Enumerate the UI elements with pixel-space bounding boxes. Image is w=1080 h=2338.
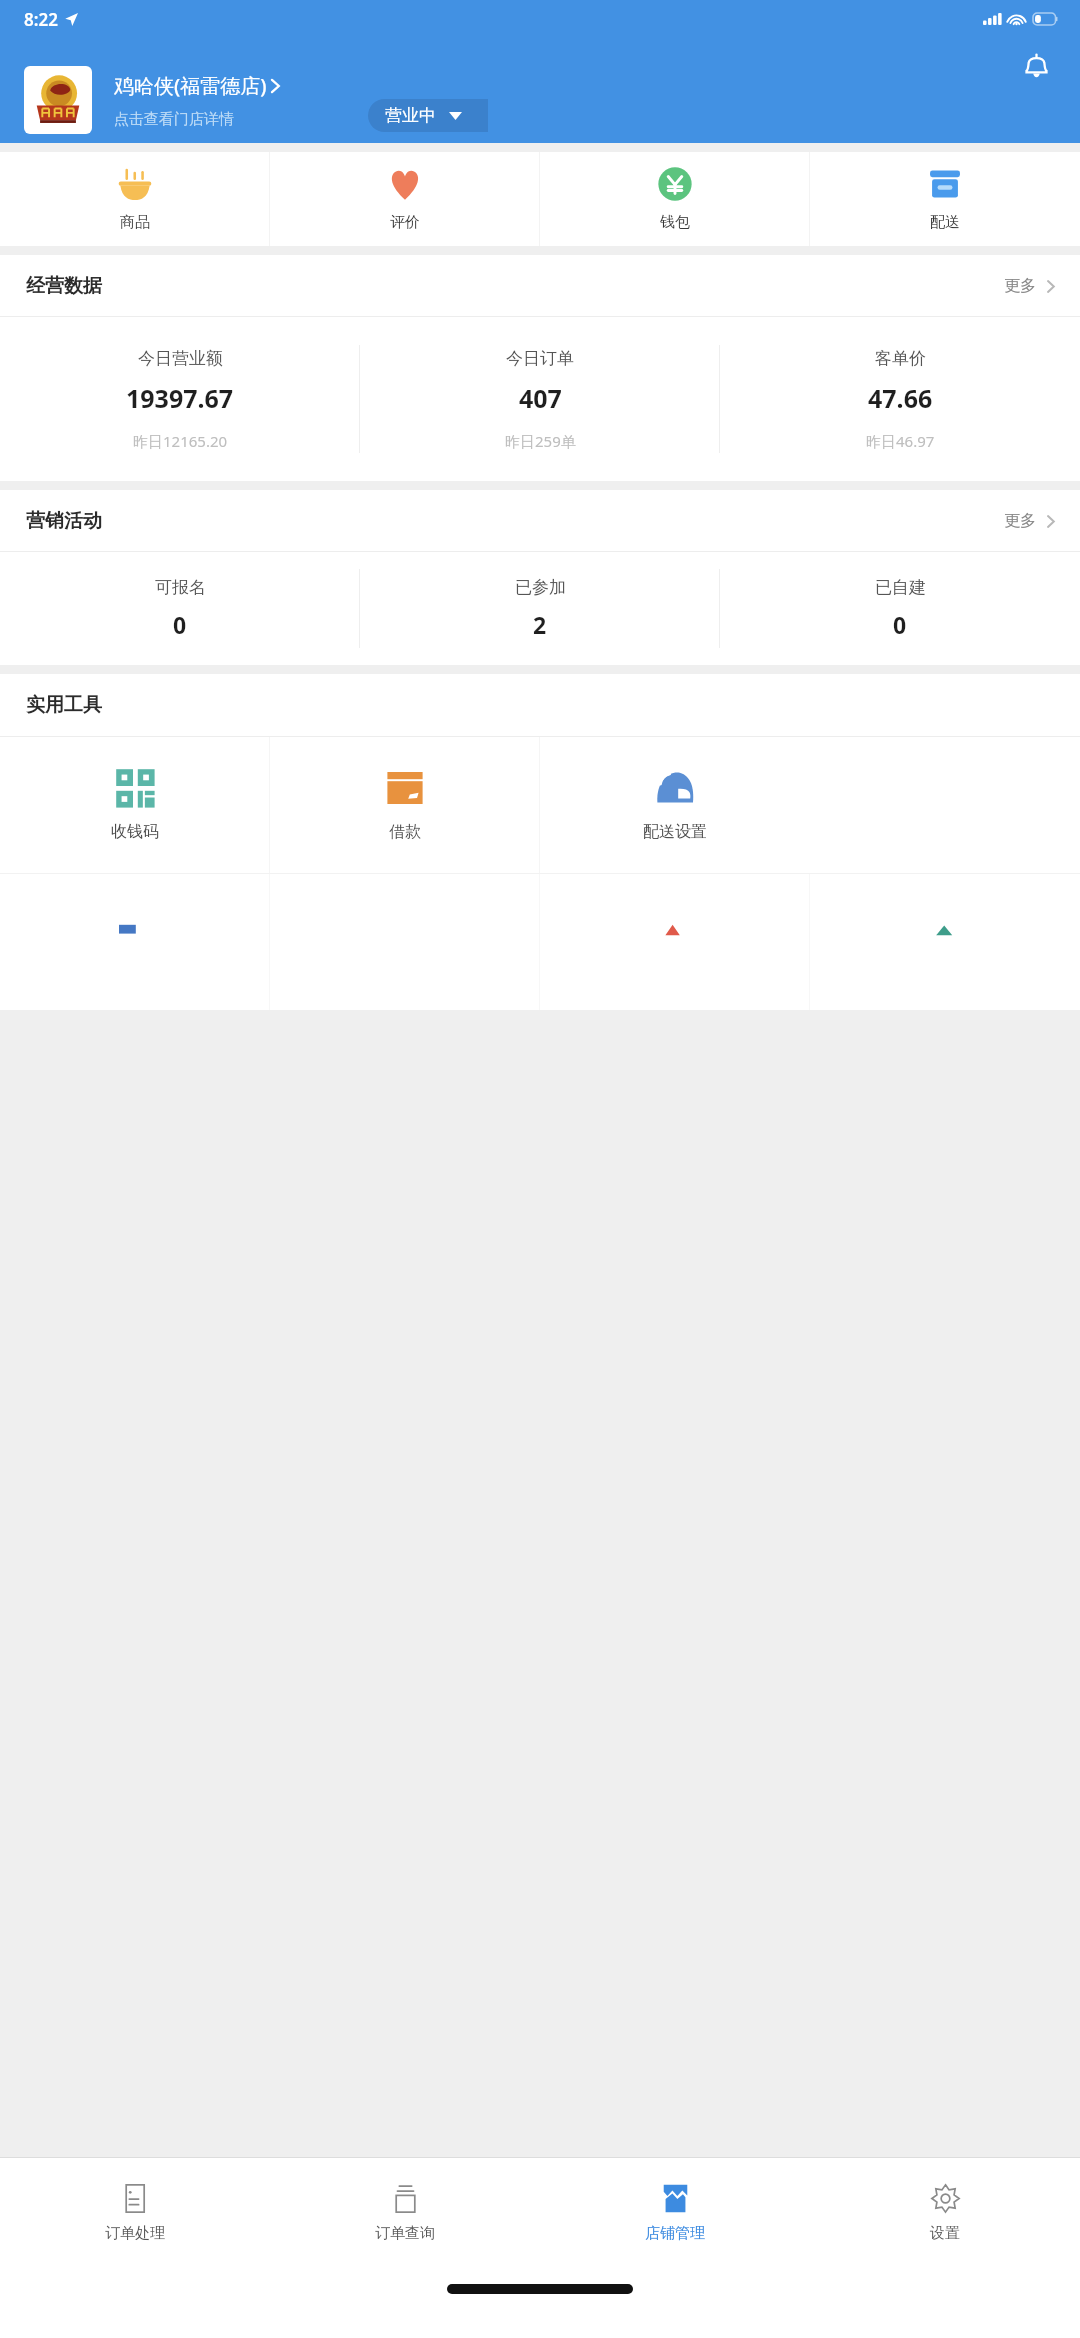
button[interactable]: 鸡哈侠(福雷德店) xyxy=(24,66,281,134)
button[interactable]: 通知 xyxy=(1014,44,1058,88)
staticText: 已参加 xyxy=(515,577,566,598)
button[interactable]: 借款 xyxy=(270,737,540,873)
staticText: 0 xyxy=(893,609,907,640)
button[interactable] xyxy=(810,874,1080,1010)
button[interactable]: 设置 xyxy=(810,2158,1080,2268)
staticText: 实用工具 xyxy=(26,693,102,717)
staticText: 营业中 xyxy=(385,105,436,126)
button[interactable]: 客单价 xyxy=(720,317,1080,481)
staticText: 今日营业额 xyxy=(138,348,223,369)
staticText: 19397.67 xyxy=(126,381,234,415)
staticText: 407 xyxy=(519,381,562,415)
button[interactable]: 钱包 xyxy=(540,152,810,246)
staticText: 今日订单 xyxy=(506,348,574,369)
button[interactable]: 配送设置 xyxy=(540,737,810,873)
staticText: 钱包 xyxy=(660,213,690,232)
staticText: 更多 xyxy=(1004,276,1036,296)
staticText: 营销活动 xyxy=(26,509,102,533)
staticText: 昨日12165.20 xyxy=(133,431,228,451)
staticText: 客单价 xyxy=(875,348,926,369)
button[interactable]: 收钱码 xyxy=(0,737,270,873)
staticText: 订单查询 xyxy=(375,2224,435,2243)
staticText: 更多 xyxy=(1004,511,1036,531)
staticText: 订单处理 xyxy=(105,2224,165,2243)
button[interactable]: 商品 xyxy=(0,152,270,246)
button[interactable]: 已参加 xyxy=(360,552,720,665)
button[interactable]: 已自建 xyxy=(720,552,1080,665)
button[interactable] xyxy=(540,874,810,1010)
staticText: 2 xyxy=(533,609,547,640)
staticText: 点击查看门店详情 xyxy=(114,110,234,129)
button[interactable]: 配送 xyxy=(810,152,1080,246)
button[interactable]: 今日营业额 xyxy=(0,317,360,481)
staticText: 鸡哈侠(福雷德店) xyxy=(114,72,267,99)
button[interactable]: 今日订单 xyxy=(360,317,720,481)
button[interactable]: 更多 xyxy=(1004,276,1056,296)
button[interactable]: 可报名 xyxy=(0,552,360,665)
button[interactable]: 评价 xyxy=(270,152,540,246)
button[interactable]: 订单查询 xyxy=(270,2158,540,2268)
button[interactable]: 店铺管理 xyxy=(540,2158,810,2268)
staticText: 已自建 xyxy=(875,577,926,598)
staticText: 47.66 xyxy=(868,381,933,415)
staticText: 可报名 xyxy=(155,577,206,598)
staticText: 昨日46.97 xyxy=(866,431,935,451)
staticText: 店铺管理 xyxy=(645,2224,705,2243)
button[interactable]: 营业中 xyxy=(368,99,488,132)
staticText: 收钱码 xyxy=(111,822,159,842)
staticText: 配送设置 xyxy=(643,822,707,842)
staticText: 评价 xyxy=(390,213,420,232)
staticText: 借款 xyxy=(389,822,421,842)
staticText: 8:22 xyxy=(24,8,58,31)
staticText: 0 xyxy=(173,609,187,640)
button[interactable]: 更多 xyxy=(1004,511,1056,531)
staticText: 配送 xyxy=(930,213,960,232)
staticText: 商品 xyxy=(120,213,150,232)
staticText: 设置 xyxy=(930,2224,960,2243)
button[interactable] xyxy=(0,874,270,1010)
staticText: 昨日259单 xyxy=(505,431,576,451)
staticText: 经营数据 xyxy=(26,274,102,298)
button[interactable]: 订单处理 xyxy=(0,2158,270,2268)
